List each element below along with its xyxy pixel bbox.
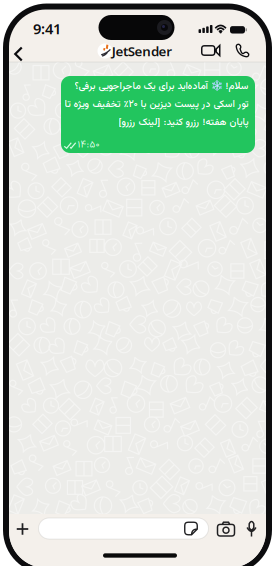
staticText: JetSender	[112, 42, 172, 60]
button[interactable]: Message	[38, 518, 208, 539]
button[interactable]: Stickers	[185, 522, 197, 535]
button[interactable]: Record voice message	[246, 521, 257, 536]
button[interactable]: Camera	[217, 522, 234, 536]
staticText: ۱۴:۵۰	[77, 137, 99, 153]
button[interactable]: Voice call	[235, 43, 250, 58]
staticText: 9:41	[33, 19, 61, 38]
button[interactable]: Attach	[17, 523, 28, 535]
staticText: تور اسکی در پیست دیزین با ۲۰٪ تخفیف ویژه…	[64, 97, 248, 112]
staticText: پایان هفته! رزرو کنید: [لینک رزرو]	[118, 115, 248, 130]
button[interactable]: Back	[15, 47, 22, 60]
staticText: سلام! ❄️ آماده‌اید برای یک ماجراجویی برف…	[74, 79, 248, 94]
button[interactable]: Video call	[202, 45, 220, 56]
